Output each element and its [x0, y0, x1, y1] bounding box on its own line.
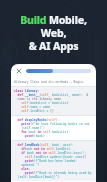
- staticText: class Library:: [14, 89, 40, 93]
- button[interactable]: Close: [15, 67, 23, 75]
- staticText: def lendBook(self, book, user):: [14, 143, 74, 147]
- staticText: self.lendDict = {}: [14, 109, 54, 113]
- staticText: self.name = name: [14, 105, 51, 109]
- staticText: #Library Class and its methods — Begin.: [14, 80, 85, 84]
- staticText: self.booksList = booksList: [14, 101, 69, 105]
- staticText: if book not in self.lendDict.keys():: [14, 151, 87, 155]
- button[interactable]: Close: [11, 64, 96, 182]
- staticText: print(book): [14, 134, 45, 138]
- staticText: updated."): [14, 163, 40, 167]
- staticText: def displayBooks(self):: [14, 118, 60, 122]
- staticText: self.lendDict.update({book: user}): [14, 155, 87, 159]
- button[interactable]: class Library:: [14, 89, 93, 113]
- button[interactable]: [26, 69, 91, 73]
- staticText: Build Mobile, Web, & AI Apps: [8, 13, 99, 53]
- staticText: name is the library name: [14, 97, 61, 101]
- staticText: {self.name}"): [14, 126, 45, 130]
- staticText: else:: [14, 167, 31, 171]
- staticText: def __init__(self, booksList, name): # t…: [14, 93, 93, 97]
- staticText: {self.lendDict[book]}"): [14, 175, 60, 179]
- staticText: print(f"Book has been lended. Database: [14, 159, 93, 163]
- button[interactable]: def lendBook(self, book, user):: [14, 143, 93, 179]
- staticText: for book in self.booksList:: [14, 130, 70, 134]
- staticText: print(f"Book is already being used by: [14, 171, 92, 175]
- staticText: ifbook not in self.lendDict:: [14, 147, 72, 151]
- staticText: print(f"We have following books in our l…: [14, 122, 93, 126]
- button[interactable]: def displayBooks(self):: [14, 118, 93, 138]
